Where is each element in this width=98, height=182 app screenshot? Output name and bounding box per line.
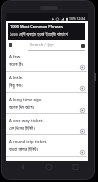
staticText: কয়েক টি। [9,61,24,67]
staticText: কিছু কম। [9,82,23,88]
staticText: এক দিকের টিকিট। [9,125,35,131]
button[interactable]: A long time ago. [6,95,88,114]
staticText: A few. [9,54,22,60]
staticText: 1000 Most Common Phrases [10,24,63,29]
staticText: যাওয়া আসার টিকিট। [9,146,39,152]
staticText: A round trip ticket. [9,139,48,145]
button[interactable]: Search / খুঁজুন [6,41,87,52]
staticText: 10% 12:34 [69,16,86,21]
button[interactable]: A one way ticket. [6,116,88,135]
staticText: A long time ago. [9,97,43,103]
staticText: A little. [9,75,24,81]
staticText: Search / খুঁজুন [30,42,54,48]
button[interactable]: A little. [6,73,88,92]
staticText: ১০০০ বেশি ব্যবহার হওয়া ইংরেজি বাক্যাংশ [10,31,68,37]
button[interactable]: A round trip ticket. [6,137,88,156]
staticText: অনেক দিন আগে। [9,104,35,110]
button[interactable]: A few. [6,52,88,71]
staticText: A one way ticket. [9,118,44,124]
